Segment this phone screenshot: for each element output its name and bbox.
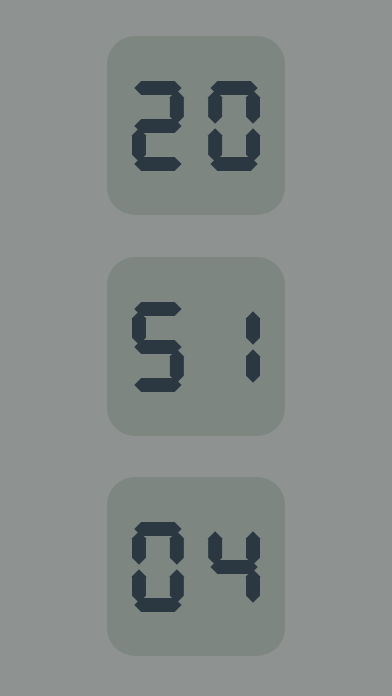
button[interactable]: Minutes 51 — [107, 257, 285, 436]
button[interactable]: Seconds 04 — [107, 477, 285, 656]
button[interactable]: Hours 20 — [107, 36, 285, 215]
